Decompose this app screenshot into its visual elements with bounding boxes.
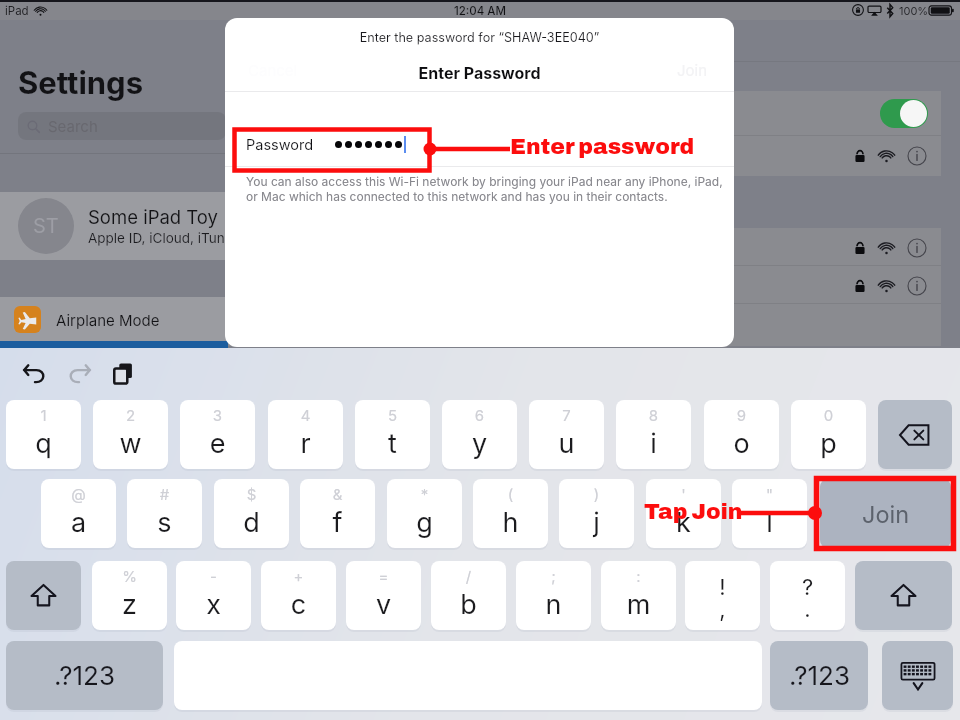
staticText: # — [127, 485, 202, 503]
button[interactable]: ) — [559, 479, 634, 548]
staticText: 0 — [791, 406, 866, 424]
button[interactable]: Join — [820, 479, 951, 548]
button[interactable]: .?123 — [6, 641, 163, 710]
staticText: d — [214, 506, 289, 539]
staticText: w — [93, 427, 168, 460]
button[interactable]: 6 — [442, 400, 517, 469]
button[interactable]: 2 — [93, 400, 168, 469]
button[interactable]: Shift — [6, 561, 81, 630]
staticText: ( — [473, 485, 548, 503]
staticText: & — [300, 485, 375, 503]
button[interactable]: 5 — [355, 400, 430, 469]
button[interactable]: .?123 — [770, 641, 868, 710]
staticText: b — [431, 588, 506, 621]
button[interactable]: Hide keyboard — [882, 641, 953, 710]
staticText: ; — [516, 567, 591, 585]
button[interactable] — [228, 228, 941, 267]
staticText: y — [442, 427, 517, 460]
staticText: Search — [48, 117, 98, 135]
staticText: + — [261, 567, 336, 585]
staticText: ) — [559, 485, 634, 503]
button[interactable]: 1 — [6, 400, 81, 469]
staticText: 12:04 AM — [0, 4, 960, 18]
staticText: o — [704, 427, 779, 460]
staticText: , — [685, 596, 760, 623]
staticText: You can also access this Wi-Fi network b… — [246, 174, 723, 189]
staticText: z — [92, 588, 167, 621]
staticText: Enter Password — [225, 63, 734, 82]
button[interactable]: * — [387, 479, 462, 548]
staticText: Apple ID, iCloud, iTunes & — [88, 230, 253, 246]
staticText: .?123 — [789, 660, 850, 691]
button[interactable]: ? — [770, 561, 845, 630]
button[interactable]: 0 — [791, 400, 866, 469]
staticText: 100% — [899, 4, 929, 17]
staticText: Enter the password for “SHAW-3EE040” — [225, 30, 734, 45]
button[interactable]: : — [601, 561, 676, 630]
staticText: r — [268, 427, 343, 460]
staticText: Join — [677, 61, 708, 79]
button[interactable]: / — [431, 561, 506, 630]
button[interactable]: % — [92, 561, 167, 630]
staticText: h — [473, 506, 548, 539]
button[interactable]: - — [176, 561, 251, 630]
staticText: 2 — [93, 406, 168, 424]
button[interactable]: Search — [18, 112, 226, 140]
button[interactable]: # — [127, 479, 202, 548]
button[interactable]: & — [300, 479, 375, 548]
staticText: i — [616, 427, 691, 460]
staticText: : — [601, 567, 676, 585]
button[interactable]: Wi-Fi toggle — [228, 91, 941, 135]
button[interactable]: Backspace — [878, 400, 952, 469]
staticText: * — [387, 485, 462, 503]
staticText: 7 — [529, 406, 604, 424]
staticText: t — [355, 427, 430, 460]
button[interactable]: 3 — [180, 400, 255, 469]
staticText: x — [176, 588, 251, 621]
button[interactable]: Wi-Fi toggle — [880, 99, 928, 128]
staticText: s — [127, 506, 202, 539]
staticText: Password — [246, 136, 314, 154]
button[interactable]: " — [732, 479, 807, 548]
staticText: f — [300, 506, 375, 539]
staticText: .?123 — [54, 660, 115, 691]
button[interactable]: ! — [685, 561, 760, 630]
staticText: q — [6, 427, 81, 460]
staticText: / — [431, 567, 506, 585]
staticText: 8 — [616, 406, 691, 424]
button[interactable]: Shift — [855, 561, 952, 630]
staticText: Enter password — [510, 135, 695, 159]
button[interactable]: ST — [0, 192, 300, 260]
button[interactable]: 7 — [529, 400, 604, 469]
button[interactable]: = — [346, 561, 421, 630]
staticText: e — [180, 427, 255, 460]
button[interactable]: ( — [473, 479, 548, 548]
button[interactable]: Paste — [108, 358, 138, 388]
button[interactable]: 4 — [268, 400, 343, 469]
button[interactable]: @ — [41, 479, 116, 548]
staticText: ST — [33, 214, 59, 238]
button[interactable]: Password — [225, 123, 734, 166]
button[interactable]: 9 — [704, 400, 779, 469]
button[interactable]: ; — [516, 561, 591, 630]
button[interactable]: 8 — [616, 400, 691, 469]
button[interactable]: $ — [214, 479, 289, 548]
staticText: 1 — [6, 406, 81, 424]
button[interactable]: ' — [646, 479, 721, 548]
button[interactable]: Airplane Mode — [0, 297, 228, 342]
staticText: 9 — [704, 406, 779, 424]
staticText: v — [346, 588, 421, 621]
button[interactable] — [228, 136, 941, 175]
staticText: Airplane Mode — [56, 311, 160, 329]
staticText: @ — [41, 485, 116, 503]
button[interactable] — [228, 266, 941, 305]
staticText: j — [559, 506, 634, 539]
staticText: l — [732, 506, 807, 539]
button[interactable]: + — [261, 561, 336, 630]
button[interactable]: Redo — [64, 358, 94, 388]
staticText: c — [261, 588, 336, 621]
button[interactable]: Undo — [20, 358, 50, 388]
